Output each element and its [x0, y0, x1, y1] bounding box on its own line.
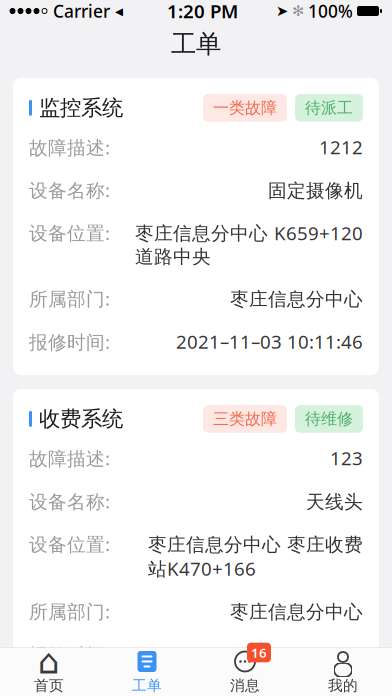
staticText: 固定摄像机 — [268, 179, 363, 202]
staticText: 设备名称: — [29, 178, 110, 202]
staticText: 故障描述: — [29, 446, 110, 471]
button[interactable]: 监控系统 — [13, 78, 379, 375]
staticText: 123 — [330, 446, 363, 470]
button[interactable]: 16 — [196, 648, 294, 696]
button[interactable]: 收费系统 — [13, 389, 379, 688]
staticText: 所属部门: — [29, 286, 110, 311]
staticText: 消息 — [230, 676, 260, 694]
staticText: 枣庄信息分中心 — [230, 601, 363, 624]
staticText: 收费系统 — [39, 406, 123, 432]
staticText: ◂ — [115, 2, 129, 20]
staticText: 枣庄信息分中心 — [230, 288, 363, 311]
staticText: Carrier — [53, 0, 110, 22]
button[interactable]: ⌂ — [0, 648, 98, 696]
staticText: 一类故障 — [213, 98, 277, 118]
staticText: 待维修 — [305, 409, 353, 429]
button[interactable]: 工单 — [98, 648, 196, 696]
staticText: 三类故障 — [213, 409, 277, 429]
staticText: 1:20 PM — [167, 0, 238, 23]
staticText: 工单 — [171, 28, 221, 59]
staticText: 故障描述: — [29, 135, 110, 160]
staticText: 2021–11–03 10:11:46 — [176, 329, 363, 354]
staticText: 100% — [308, 0, 353, 22]
staticText: 天线头 — [306, 490, 363, 513]
staticText: 我的 — [328, 676, 358, 694]
staticText: 首页 — [34, 676, 64, 694]
staticText: 待派工 — [305, 98, 353, 118]
staticText: ⌂ — [38, 642, 60, 681]
staticText: 1212 — [319, 135, 363, 159]
staticText: 2021–11–03 10:11:46 — [176, 642, 363, 667]
button[interactable]: 我的 — [294, 648, 392, 696]
staticText: 所属部门: — [29, 599, 110, 624]
staticText: ➤ — [276, 3, 288, 19]
staticText: ✻ — [292, 3, 304, 19]
staticText: 设备位置: — [29, 220, 110, 245]
staticText: 报修时间: — [29, 329, 110, 354]
staticText: 监控系统 — [39, 95, 123, 121]
staticText: 设备名称: — [29, 489, 110, 514]
staticText: 枣庄信息分中心 枣庄收费站K470+166 — [148, 533, 363, 581]
staticText: 工单 — [132, 676, 162, 694]
staticText: 设备位置: — [29, 532, 110, 556]
staticText: 枣庄信息分中心 K659+120道路中央 — [135, 220, 363, 268]
staticText: 报修时间: — [29, 642, 110, 667]
staticText: 16 — [251, 644, 267, 661]
